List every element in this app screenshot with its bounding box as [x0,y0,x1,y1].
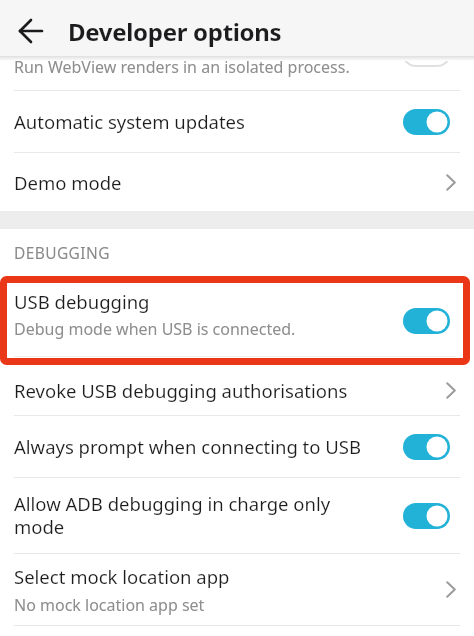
staticText: Debug mode when USB is connected. [14,318,296,340]
button[interactable]: Allow ADB debugging in charge only mode [0,478,474,553]
button[interactable]: Always prompt when connecting to USB [0,416,474,477]
staticText: Automatic system updates [14,109,245,134]
staticText: Allow ADB debugging in charge only mode [14,491,331,540]
button[interactable]: Run WebView renders in an isolated proce… [0,61,474,90]
staticText: Select mock location app [14,564,230,589]
staticText: Run WebView renders in an isolated proce… [14,61,350,78]
button[interactable]: Revoke USB debugging authorisations [0,365,474,415]
staticText: USB debugging [14,289,150,314]
staticText: Demo mode [14,170,122,195]
button[interactable]: Select mock location app [0,554,474,625]
button[interactable]: Demo mode [0,153,474,211]
button[interactable]: USB debugging [0,276,470,365]
staticText: Developer options [68,15,282,48]
staticText: DEBUGGING [14,242,110,263]
button[interactable]: Automatic system updates [0,91,474,152]
staticText: Revoke USB debugging authorisations [14,378,348,403]
button[interactable] [0,3,56,59]
staticText: Always prompt when connecting to USB [14,434,361,459]
staticText: No mock location app set [14,594,205,616]
